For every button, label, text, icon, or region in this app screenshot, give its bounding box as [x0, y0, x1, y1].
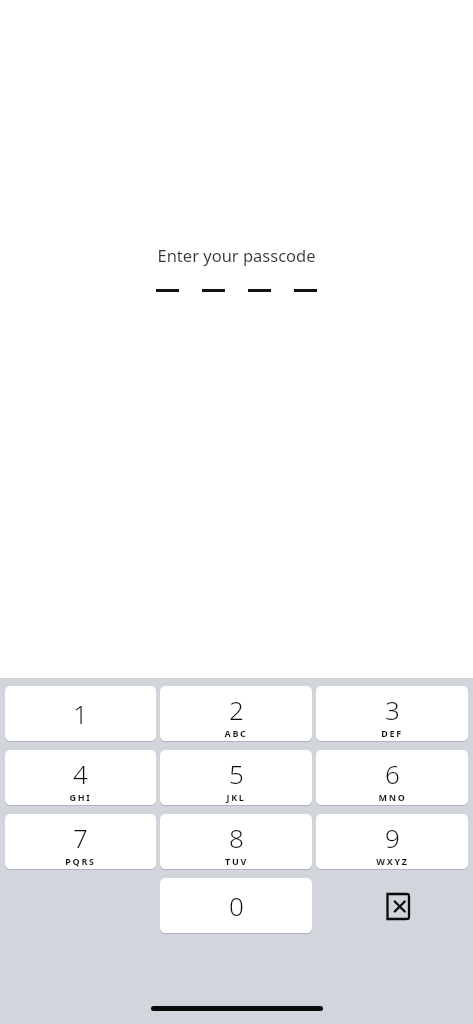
button[interactable]: 9	[316, 814, 468, 869]
button[interactable]: 1	[5, 686, 156, 741]
staticText: Enter your passcode	[157, 244, 316, 266]
staticText: PQRS	[65, 855, 96, 867]
staticText: WXYZ	[376, 855, 409, 867]
staticText: JKL	[226, 791, 246, 803]
button[interactable]: Delete	[316, 878, 468, 934]
button[interactable]: 8	[160, 814, 312, 869]
staticText: ABC	[224, 727, 248, 739]
staticText: 6	[385, 756, 400, 791]
staticText: GHI	[69, 791, 92, 803]
staticText: 8	[229, 820, 244, 855]
staticText: 4	[73, 756, 88, 791]
button[interactable]: 3	[316, 686, 468, 741]
button[interactable]: 7	[5, 814, 156, 869]
staticText: 2	[229, 692, 244, 727]
button[interactable]: 2	[160, 686, 312, 741]
staticText: 9	[385, 820, 400, 855]
button[interactable]: 4	[5, 750, 156, 805]
staticText: 1	[73, 696, 88, 731]
staticText: 5	[229, 756, 244, 791]
staticText: TUV	[225, 855, 248, 867]
staticText: DEF	[381, 727, 403, 739]
button[interactable]: 5	[160, 750, 312, 805]
staticText: MNO	[378, 791, 407, 803]
staticText: 0	[229, 888, 244, 923]
staticText: 7	[73, 820, 88, 855]
staticText: 3	[385, 692, 400, 727]
button[interactable]: 0	[160, 878, 312, 933]
button[interactable]: 6	[316, 750, 468, 805]
